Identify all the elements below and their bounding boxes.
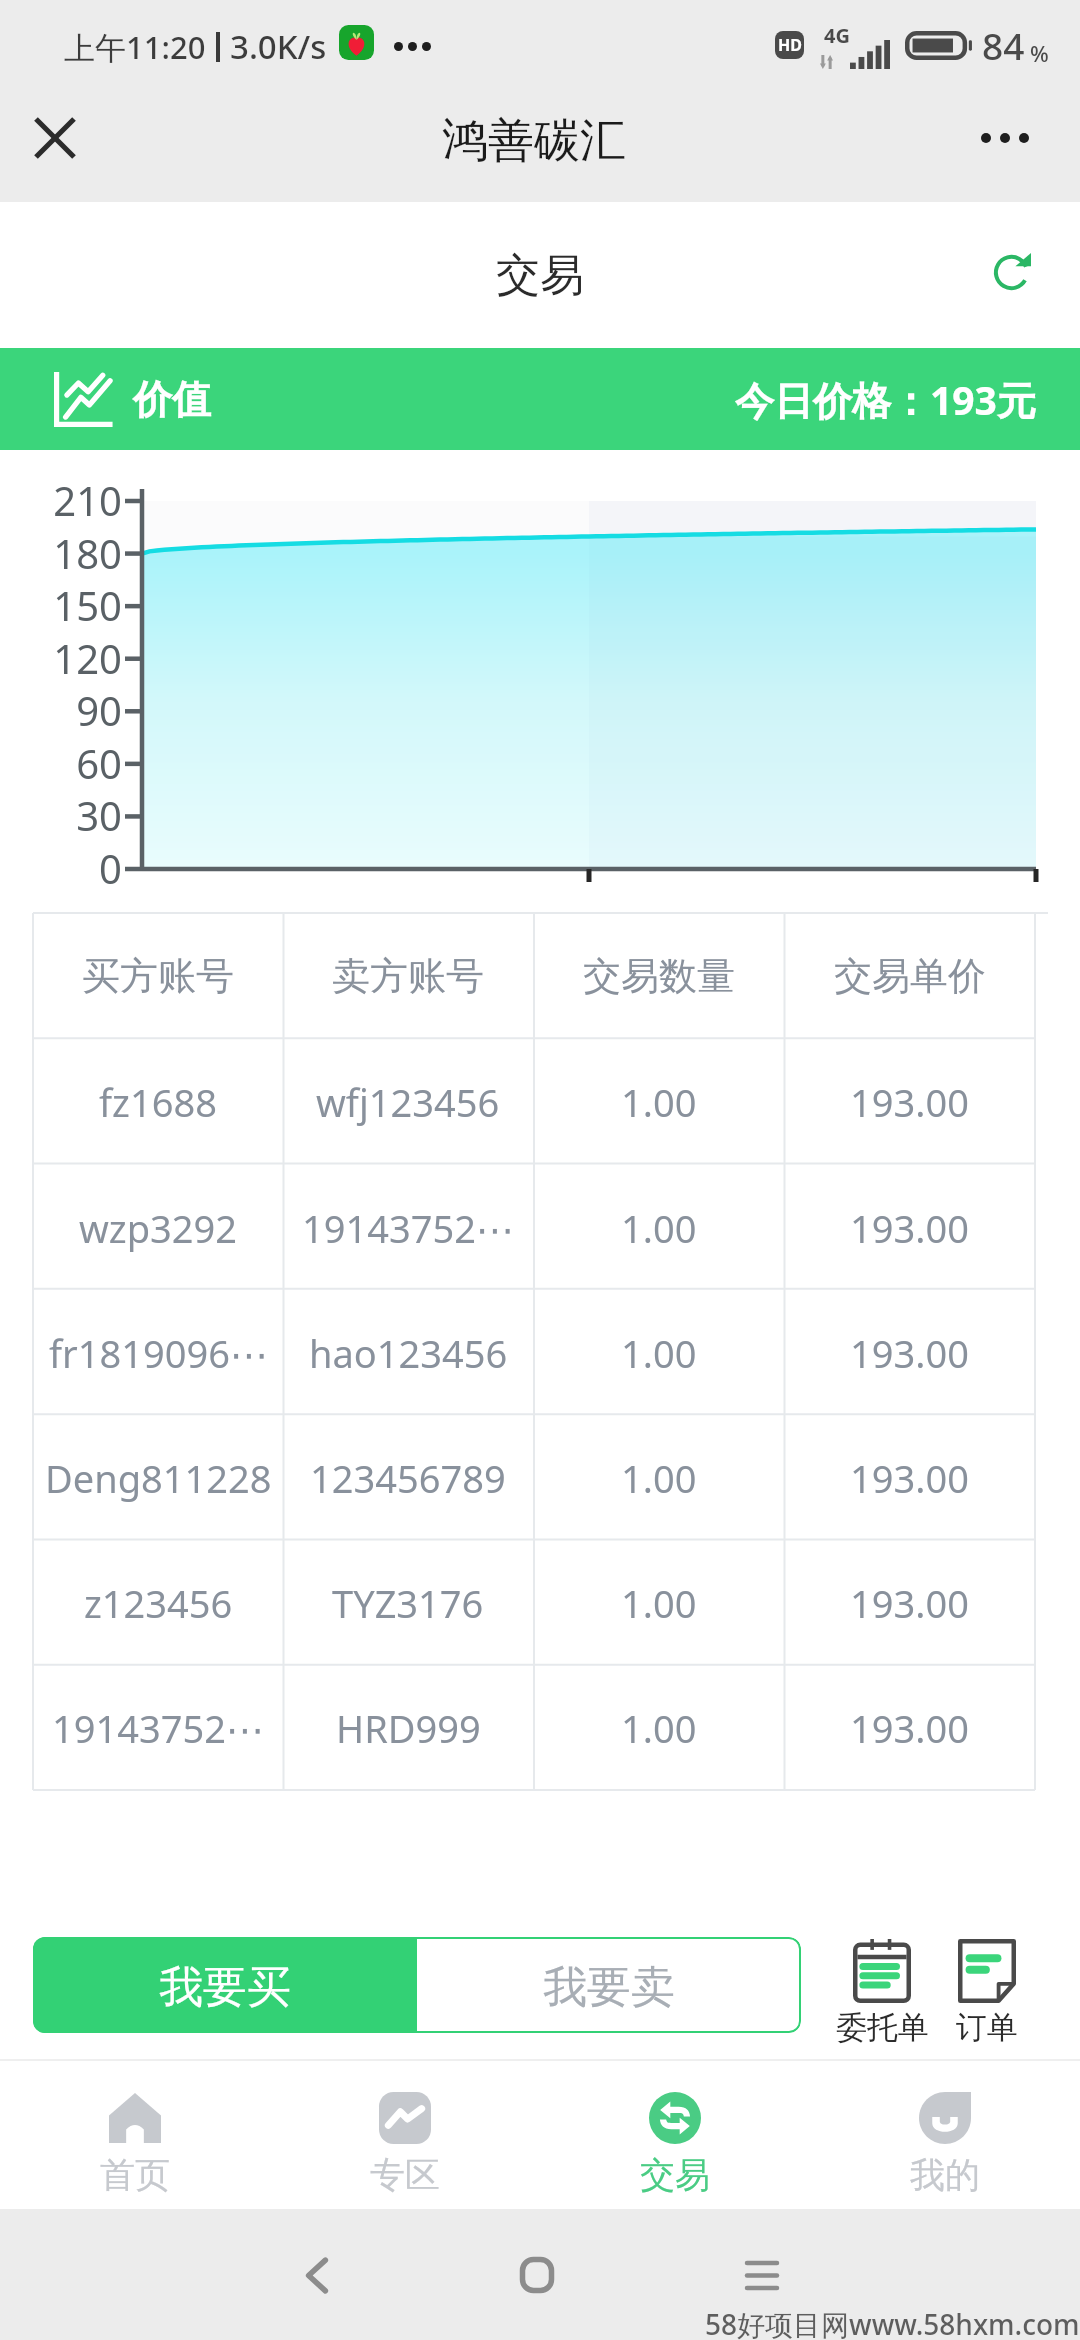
staticText: % [1030, 38, 1049, 68]
staticText: TYZ3176 [332, 1577, 484, 1629]
button[interactable]: 订单 [922, 1939, 1052, 2047]
staticText: z123456 [84, 1577, 233, 1629]
staticText: 我要买 [159, 1960, 291, 2015]
staticText: 1.00 [621, 1577, 697, 1629]
button[interactable]: 我的 [810, 2059, 1080, 2209]
staticText: 123456789 [310, 1452, 506, 1504]
button[interactable]: 我要买 [33, 1937, 417, 2033]
staticText: 30 [0, 788, 122, 842]
staticText: HD [778, 34, 802, 56]
staticText: 鸿善碳汇 [442, 112, 626, 170]
staticText: 1.00 [621, 1202, 697, 1254]
staticText: 价值 [133, 375, 211, 424]
button[interactable]: 专区 [270, 2059, 540, 2209]
button[interactable]: 我要卖 [417, 1937, 801, 2033]
staticText: 委托单 [836, 2008, 929, 2047]
staticText: 90 [0, 683, 122, 737]
staticText: 交易数量 [583, 952, 735, 1000]
staticText: 1.00 [621, 1452, 697, 1504]
staticText: 我的 [910, 2153, 980, 2197]
staticText: 193.00 [850, 1452, 969, 1504]
button[interactable]: Back [277, 2235, 357, 2315]
button[interactable]: 委托单 [817, 1939, 947, 2047]
staticText: 交易单价 [834, 952, 986, 1000]
button[interactable]: Close [6, 89, 104, 187]
staticText: 1.00 [621, 1702, 697, 1754]
staticText: HRD999 [336, 1702, 481, 1754]
button[interactable]: Home [497, 2235, 577, 2315]
button[interactable]: More options [956, 89, 1054, 187]
staticText: 193.00 [850, 1327, 969, 1379]
staticText: 今日价格：193元 [735, 373, 1036, 426]
staticText: 卖方账号 [332, 952, 484, 1000]
staticText: wzp3292 [79, 1202, 238, 1254]
staticText: 1.00 [621, 1327, 697, 1379]
staticText: 193.00 [850, 1202, 969, 1254]
staticText: 193.00 [850, 1577, 969, 1629]
staticText: hao123456 [309, 1327, 508, 1379]
staticText: 150 [0, 578, 122, 632]
staticText: fz1688 [99, 1076, 217, 1128]
staticText: 84 [982, 20, 1025, 70]
staticText: fr1819096⋯ [49, 1327, 268, 1379]
staticText: 19143752⋯ [52, 1702, 264, 1754]
staticText: 193.00 [850, 1702, 969, 1754]
staticText: 我要卖 [543, 1960, 675, 2015]
staticText: wfj123456 [316, 1076, 500, 1128]
staticText: 买方账号 [82, 952, 234, 1000]
staticText: 193.00 [850, 1076, 969, 1128]
staticText: 180 [0, 526, 122, 580]
button[interactable]: 首页 [0, 2059, 270, 2209]
staticText: 0 [0, 841, 122, 895]
staticText: 交易 [496, 248, 584, 303]
staticText: Deng811228 [45, 1452, 272, 1504]
staticText: 210 [0, 473, 122, 527]
staticText: 首页 [100, 2153, 170, 2197]
button[interactable]: Refresh [978, 235, 1058, 315]
staticText: 订单 [956, 2008, 1018, 2047]
staticText: 专区 [370, 2153, 440, 2197]
staticText: 上午11:20 [64, 26, 206, 68]
staticText: 交易 [640, 2153, 710, 2197]
button[interactable]: 交易 [540, 2059, 810, 2209]
button[interactable]: Recents [722, 2235, 802, 2315]
staticText: 3.0K/s [230, 24, 327, 69]
staticText: 19143752⋯ [302, 1202, 514, 1254]
staticText: 120 [0, 631, 122, 685]
staticText: 1.00 [621, 1076, 697, 1128]
staticText: 4G [824, 22, 850, 49]
staticText: 60 [0, 736, 122, 790]
staticText: 58好项目网www.58hxm.com [705, 2305, 1080, 2340]
